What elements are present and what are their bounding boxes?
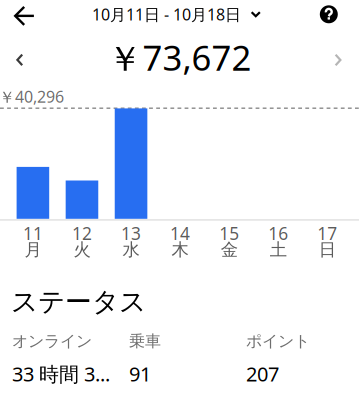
staticText: 日: [319, 239, 336, 260]
staticText: 33 時間 3...: [12, 360, 110, 387]
staticText: 乗車: [129, 331, 161, 351]
staticText: 10月11日 - 10月18日: [92, 4, 241, 25]
staticText: 17: [317, 222, 337, 245]
staticText: 14: [170, 222, 190, 245]
staticText: 91: [129, 360, 151, 387]
button[interactable]: Back: [2, 0, 46, 33]
staticText: 月: [24, 239, 41, 260]
staticText: 13: [121, 222, 141, 245]
staticText: 15: [219, 222, 239, 245]
staticText: オンライン: [12, 331, 92, 351]
staticText: 水: [122, 239, 139, 260]
button[interactable]: 10月11日 - 10月18日: [84, 0, 269, 31]
staticText: ポイント: [246, 331, 310, 351]
staticText: 土: [270, 239, 287, 260]
staticText: ステータス: [11, 285, 146, 318]
staticText: 16: [268, 222, 288, 245]
staticText: 12: [72, 222, 92, 245]
button[interactable]: Previous week: [0, 39, 40, 81]
staticText: 火: [73, 239, 90, 260]
staticText: 木: [172, 239, 189, 260]
staticText: 金: [221, 239, 238, 260]
button[interactable]: Help: [311, 0, 347, 31]
staticText: ￥73,672: [107, 34, 251, 80]
staticText: ￥40,296: [0, 86, 64, 107]
button[interactable]: Next week: [318, 39, 358, 81]
staticText: 207: [246, 360, 279, 387]
staticText: 11: [23, 222, 43, 245]
